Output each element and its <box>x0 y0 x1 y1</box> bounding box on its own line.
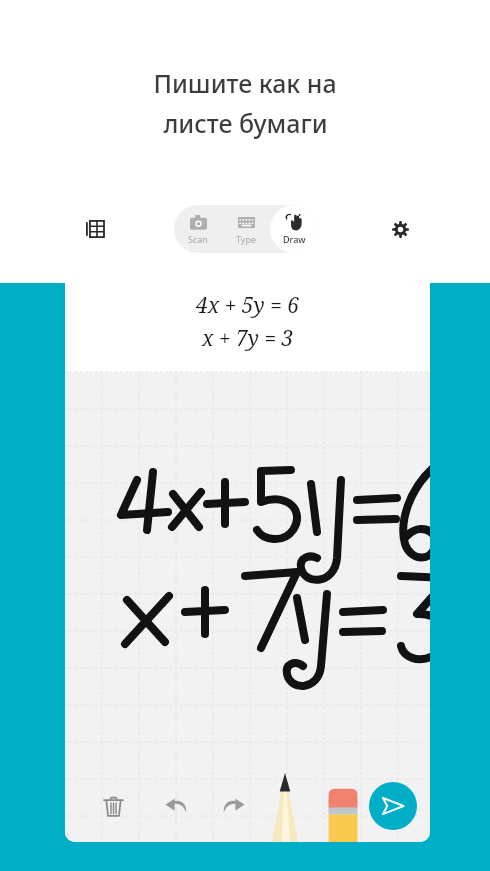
button[interactable]: Type <box>222 205 270 253</box>
button[interactable]: Delete <box>91 784 135 828</box>
button[interactable]: Undo <box>155 784 199 828</box>
staticText: листе бумаги <box>163 106 328 140</box>
button[interactable]: Send <box>369 782 417 830</box>
button[interactable]: Pencil <box>263 770 307 842</box>
staticText: Пишите как на <box>153 66 337 100</box>
button[interactable]: Draw <box>270 205 318 253</box>
staticText: Type <box>236 233 257 245</box>
button[interactable]: List <box>73 207 117 251</box>
staticText: Draw <box>283 233 306 245</box>
staticText: 4x + 5y = 6 <box>196 291 300 320</box>
button[interactable]: Settings <box>378 207 422 251</box>
button[interactable]: Eraser <box>323 770 363 842</box>
staticText: x + 7y = 3 <box>202 324 294 353</box>
button[interactable]: Scan <box>174 205 222 253</box>
button[interactable]: Redo <box>211 784 255 828</box>
staticText: Scan <box>188 233 208 245</box>
